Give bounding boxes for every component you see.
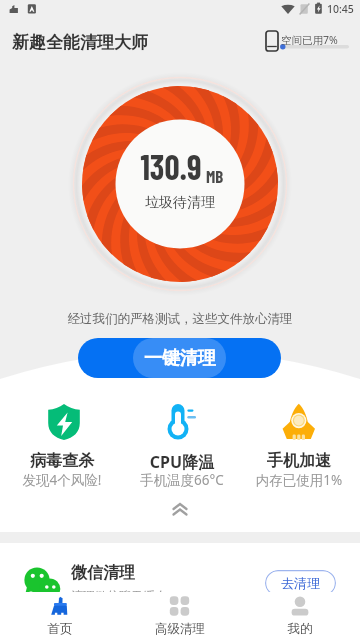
staticText: 清理微信聊天缓存	[71, 588, 167, 603]
staticText: 高级清理	[120, 621, 240, 637]
staticText: 手机温度66°C	[122, 471, 242, 489]
staticText: 病毒查杀	[2, 451, 122, 471]
button[interactable]: 微信清理	[0, 543, 360, 592]
staticText: 经过我们的严格测试，这些文件放心清理	[0, 311, 360, 327]
staticText: MB	[206, 166, 224, 186]
staticText: 一键清理	[144, 347, 216, 370]
button[interactable]: 一键清理	[78, 338, 281, 378]
staticText: 首页	[0, 621, 120, 637]
button[interactable]: 去清理	[265, 570, 336, 596]
staticText: 微信清理	[71, 563, 135, 583]
staticText: 空间已用7%	[281, 33, 338, 47]
button[interactable]: 我的	[240, 592, 360, 640]
button[interactable]: 高级清理	[120, 592, 240, 640]
button[interactable]: Storage usage	[262, 28, 354, 54]
staticText: 发现4个风险!	[2, 471, 122, 489]
staticText: 130.9	[140, 143, 202, 187]
button[interactable]: Expand more	[160, 498, 200, 524]
staticText: 新趣全能清理大师	[12, 32, 148, 53]
button[interactable]: CPU降温	[122, 400, 242, 492]
staticText: 手机加速	[239, 451, 359, 471]
staticText: CPU降温	[122, 451, 242, 473]
button[interactable]: 首页	[0, 592, 120, 640]
staticText: 我的	[240, 621, 360, 637]
button[interactable]: 手机加速	[239, 400, 359, 492]
staticText: 10:45	[327, 2, 354, 16]
staticText: 去清理	[281, 575, 320, 591]
button[interactable]: 病毒查杀	[2, 400, 122, 492]
staticText: 内存已使用1%	[239, 471, 359, 489]
staticText: 垃圾待清理	[0, 194, 360, 212]
